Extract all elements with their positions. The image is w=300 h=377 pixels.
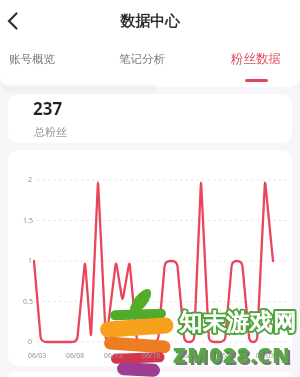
staticText: 0 xyxy=(28,337,33,347)
staticText: 06/03 xyxy=(28,351,47,360)
staticText: 06/23 xyxy=(180,351,199,360)
staticText: 账号概览 xyxy=(9,52,55,66)
button[interactable]: 账号概览 xyxy=(4,44,60,74)
staticText: ZM028.CN xyxy=(173,341,292,370)
staticText: 1.5 xyxy=(23,216,33,226)
staticText: 总粉丝 xyxy=(34,125,67,139)
staticText: 知末游戏网 xyxy=(179,308,297,337)
button[interactable]: 笔记分析 xyxy=(114,44,170,74)
button[interactable] xyxy=(8,94,292,143)
staticText: 知末游戏网 xyxy=(179,308,297,337)
staticText: 06/08 xyxy=(66,351,85,360)
staticText: 07/03 xyxy=(256,351,275,360)
staticText: 数据中心 xyxy=(120,12,180,31)
staticText: 0.5 xyxy=(23,297,33,307)
staticText: 06/13 xyxy=(104,351,123,360)
staticText: 1 xyxy=(28,256,33,266)
staticText: 粉丝数据 xyxy=(231,51,281,67)
staticText: 2 xyxy=(28,175,33,185)
staticText: 06/28 xyxy=(218,351,237,360)
button[interactable]: 粉丝数据 xyxy=(228,44,284,74)
staticText: 237 xyxy=(33,97,63,120)
staticText: 06/18 xyxy=(142,351,161,360)
button[interactable] xyxy=(0,0,40,42)
staticText: 笔记分析 xyxy=(119,52,165,66)
staticText: ZM028.CN xyxy=(175,343,294,372)
